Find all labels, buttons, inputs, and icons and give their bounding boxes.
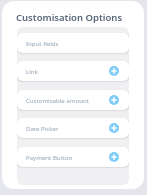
staticText: Date Picker [26, 124, 59, 132]
staticText: Payment Button [26, 153, 73, 161]
button[interactable]: Date Picker [17, 118, 129, 138]
staticText: Customisation Options [16, 11, 123, 24]
button[interactable]: Customisable amount [17, 90, 129, 110]
button[interactable]: Link [17, 61, 129, 81]
staticText: Customisable amount [26, 96, 89, 104]
staticText: Link [26, 67, 38, 75]
button[interactable]: Input fields [17, 33, 129, 53]
staticText: Input fields [26, 39, 59, 47]
button[interactable]: Payment Button [17, 147, 129, 167]
